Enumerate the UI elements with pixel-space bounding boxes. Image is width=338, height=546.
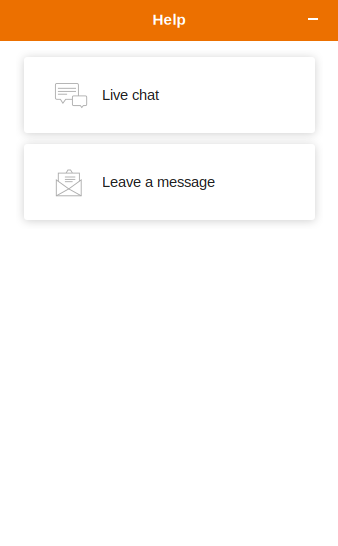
staticText: Live chat <box>102 87 159 103</box>
staticText: Leave a message <box>102 174 215 190</box>
staticText: Help <box>152 11 185 28</box>
button[interactable]: Minimize <box>294 0 338 41</box>
button[interactable]: Leave a message <box>24 144 315 220</box>
button[interactable]: Live chat <box>24 57 315 133</box>
